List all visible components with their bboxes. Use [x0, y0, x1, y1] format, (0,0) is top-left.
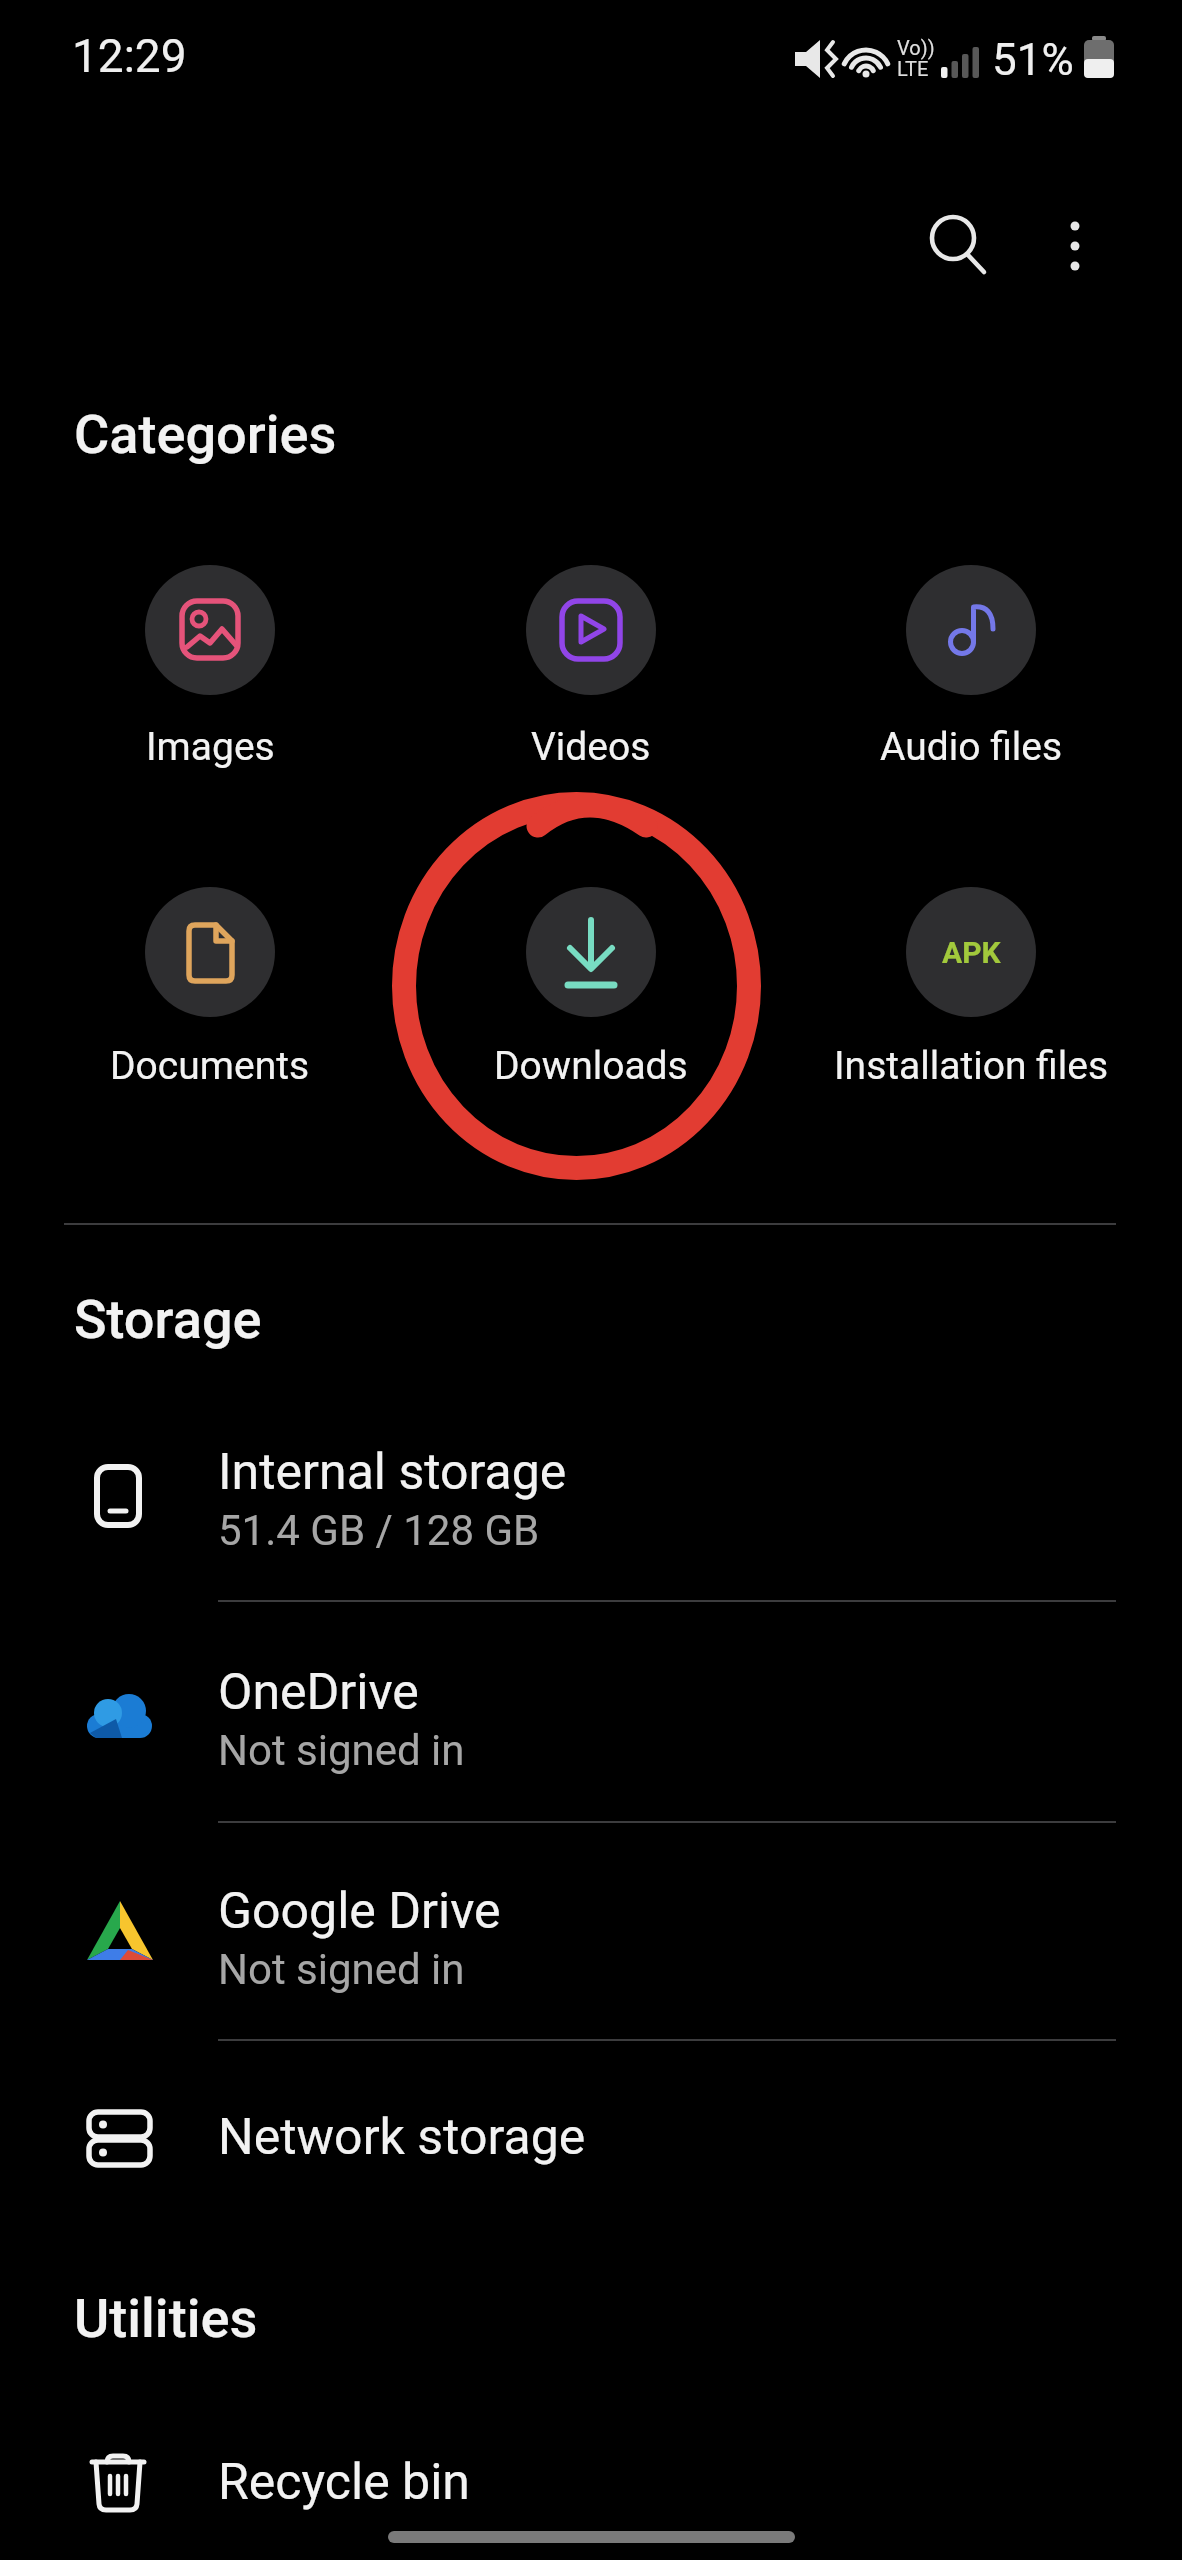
- staticText: Utilities: [74, 2287, 258, 2350]
- staticText: Images: [146, 724, 275, 770]
- staticText: Categories: [74, 403, 337, 466]
- staticText: Audio files: [880, 724, 1063, 770]
- staticText: 51.4 GB / 128 GB: [218, 1506, 540, 1555]
- staticText: Network storage: [218, 2108, 586, 2167]
- button[interactable]: [0, 2398, 1182, 2560]
- button[interactable]: [401, 555, 781, 795]
- staticText: Videos: [531, 724, 651, 770]
- staticText: 12:29: [72, 29, 187, 83]
- staticText: LTE: [897, 57, 929, 80]
- button[interactable]: [20, 877, 400, 1117]
- button[interactable]: [915, 200, 1005, 290]
- button[interactable]: [401, 877, 781, 1117]
- button[interactable]: [0, 2053, 1182, 2223]
- staticText: Vo)): [897, 36, 935, 59]
- button[interactable]: [0, 1850, 1182, 2020]
- button[interactable]: [1035, 200, 1115, 290]
- staticText: Google Drive: [218, 1882, 501, 1941]
- button[interactable]: [20, 555, 400, 795]
- button[interactable]: [781, 555, 1161, 795]
- button[interactable]: [0, 1411, 1182, 1581]
- staticText: Not signed in: [218, 1945, 465, 1994]
- button[interactable]: [0, 1631, 1182, 1801]
- button[interactable]: [781, 877, 1161, 1117]
- staticText: Downloads: [494, 1043, 688, 1089]
- staticText: APK: [942, 935, 1001, 970]
- staticText: Documents: [110, 1043, 310, 1089]
- staticText: Installation files: [834, 1043, 1109, 1089]
- staticText: Internal storage: [218, 1443, 567, 1502]
- staticText: Storage: [74, 1288, 262, 1351]
- staticText: 51%: [992, 34, 1074, 86]
- staticText: Recycle bin: [218, 2453, 470, 2512]
- staticText: Not signed in: [218, 1726, 465, 1775]
- staticText: OneDrive: [218, 1663, 419, 1722]
